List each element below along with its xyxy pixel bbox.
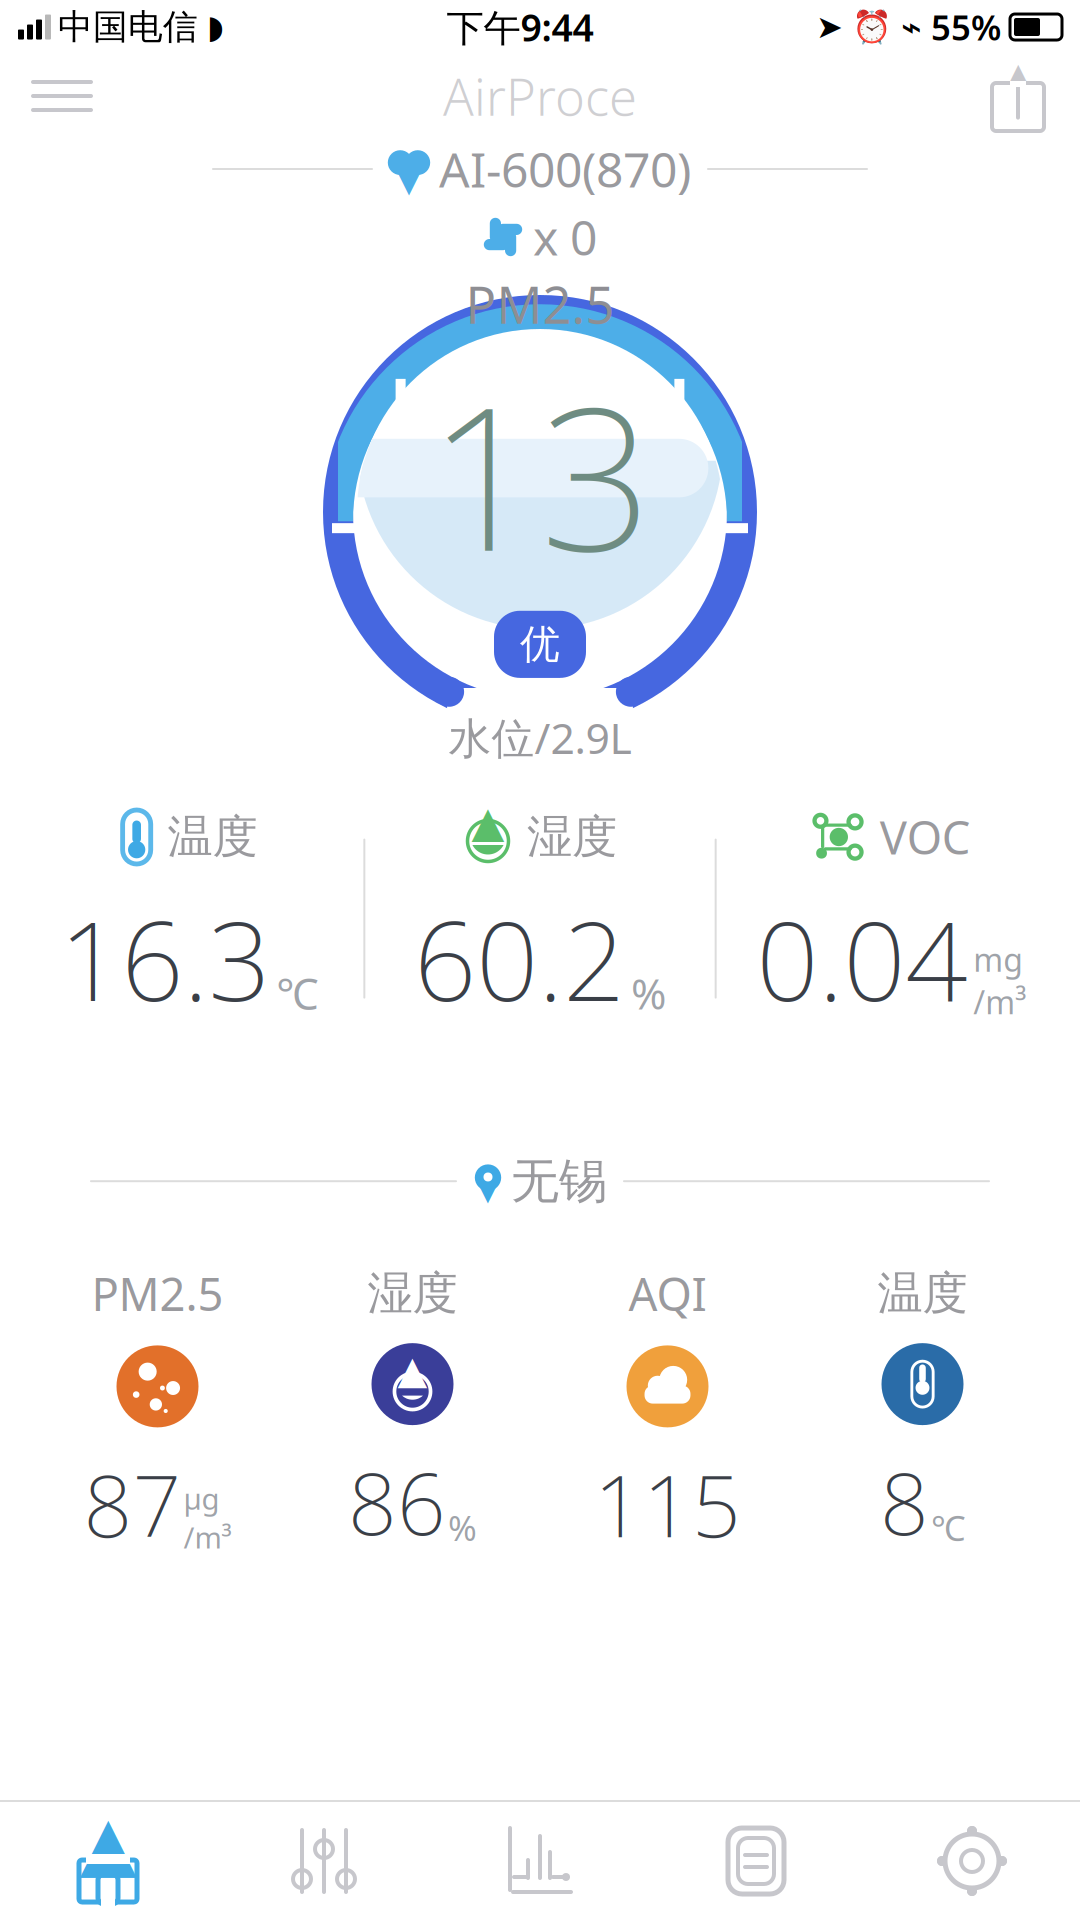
button[interactable]: Home: [0, 1802, 216, 1920]
staticText: ▲: [471, 798, 504, 846]
staticText: ▼: [477, 1174, 499, 1206]
staticText: ▲: [397, 1348, 427, 1392]
button[interactable]: History: [432, 1802, 648, 1920]
staticText: AirProce: [443, 62, 637, 130]
staticText: 温度: [167, 809, 257, 865]
staticText: ℃: [931, 1504, 965, 1550]
staticText: ◗: [207, 9, 224, 45]
button[interactable]: Menu: [14, 58, 110, 134]
staticText: ⌁: [901, 7, 922, 47]
button[interactable]: Controls: [216, 1802, 432, 1920]
staticText: 优: [520, 620, 560, 669]
button[interactable]: PM2.5: [30, 1257, 285, 1567]
staticText: 温度: [877, 1265, 967, 1321]
staticText: 8: [880, 1445, 929, 1558]
staticText: 中国电信: [58, 6, 198, 48]
button[interactable]: Settings: [864, 1802, 1080, 1920]
staticText: 87: [83, 1447, 181, 1561]
button[interactable]: 温度: [795, 1259, 1050, 1564]
staticText: 0.04: [756, 886, 967, 1031]
staticText: 86: [348, 1445, 446, 1558]
staticText: AQI: [628, 1263, 706, 1323]
staticText: 115: [594, 1447, 741, 1561]
staticText: %: [448, 1504, 477, 1550]
staticText: ➤: [816, 9, 843, 45]
staticText: x 0: [533, 205, 597, 269]
staticText: PM2.5: [465, 270, 614, 338]
button[interactable]: Share: [970, 58, 1066, 134]
staticText: mg: [973, 938, 1023, 981]
staticText: /m³: [973, 981, 1026, 1023]
staticText: ▲: [1009, 58, 1027, 86]
button[interactable]: 湿度: [285, 1259, 540, 1564]
staticText: PM2.5: [91, 1263, 223, 1323]
staticText: %: [631, 964, 666, 1021]
staticText: ▲: [79, 1801, 136, 1885]
staticText: 下午9:44: [446, 2, 593, 52]
staticText: AI-600(870): [439, 137, 691, 201]
button[interactable]: Filter: [648, 1802, 864, 1920]
staticText: /m³: [183, 1518, 231, 1557]
staticText: 水位/2.9L: [448, 709, 631, 766]
staticText: ℃: [276, 964, 318, 1021]
staticText: 湿度: [527, 809, 617, 865]
button[interactable]: AQI: [540, 1257, 795, 1567]
staticText: 60.2: [414, 886, 625, 1031]
staticText: ⏰: [852, 9, 892, 45]
staticText: 湿度: [367, 1265, 457, 1321]
staticText: 13: [428, 343, 652, 605]
staticText: VOC: [880, 807, 971, 867]
staticText: µg: [183, 1479, 219, 1518]
staticText: ▼: [392, 151, 425, 200]
staticText: 无锡: [511, 1152, 607, 1211]
staticText: 55%: [931, 4, 1001, 50]
staticText: 16.3: [59, 886, 270, 1031]
